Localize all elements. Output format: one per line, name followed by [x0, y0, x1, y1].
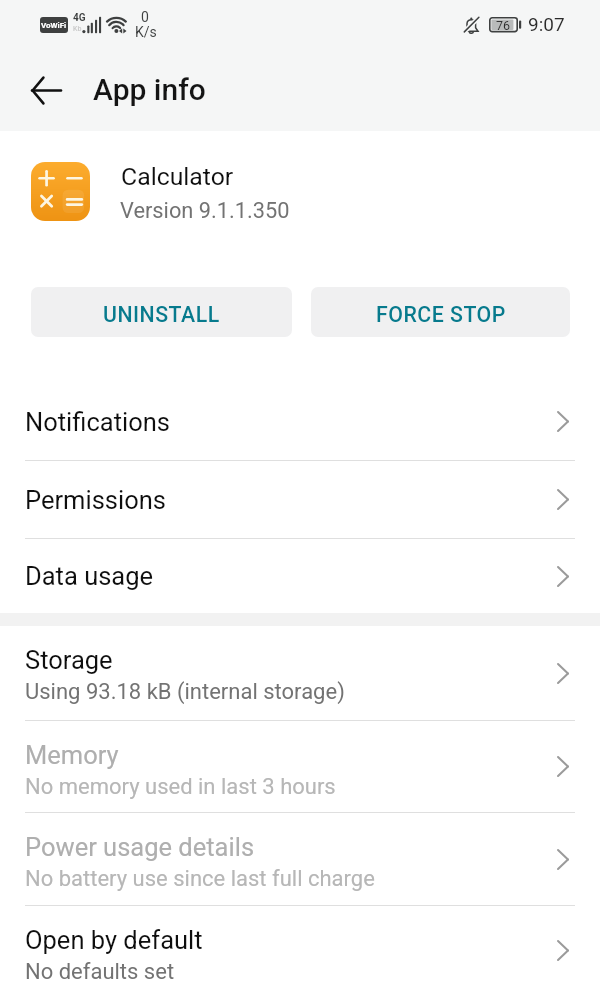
staticText: Open by default — [25, 925, 203, 955]
staticText: UNINSTALL — [103, 302, 220, 327]
staticText: No defaults set — [25, 959, 175, 985]
staticText: Notifications — [25, 407, 170, 437]
staticText: Power usage details — [25, 832, 255, 862]
staticText: No memory used in last 3 hours — [25, 774, 336, 800]
button[interactable]: FORCE STOP — [311, 287, 570, 337]
button[interactable]: Memory — [0, 721, 600, 812]
staticText: 0 — [141, 9, 149, 25]
staticText: K/s — [135, 24, 157, 40]
other: Silent mode — [463, 16, 481, 34]
button[interactable]: Power usage details — [0, 813, 600, 905]
staticText: Storage — [25, 645, 113, 675]
button[interactable]: Open by default — [0, 906, 600, 994]
button[interactable]: Notifications — [0, 383, 600, 460]
staticText: Data usage — [25, 561, 154, 591]
staticText: Using 93.18 kB (internal storage) — [25, 679, 345, 705]
staticText: No battery use since last full charge — [25, 866, 375, 892]
staticText: Version 9.1.1.350 — [120, 198, 290, 224]
staticText: VoWiFi — [41, 21, 67, 30]
button[interactable]: Storage — [0, 626, 600, 720]
button[interactable]: Permissions — [0, 461, 600, 538]
button[interactable]: Back — [12, 56, 80, 124]
staticText: 4G — [73, 12, 86, 24]
button[interactable]: UNINSTALL — [31, 287, 292, 337]
staticText: 76 — [496, 18, 511, 33]
staticText: FORCE STOP — [376, 302, 506, 327]
staticText: Permissions — [25, 485, 166, 515]
staticText: Memory — [25, 740, 119, 770]
staticText: Kb — [73, 25, 82, 33]
staticText: 9:07 — [528, 13, 565, 35]
button[interactable]: Data usage — [0, 539, 600, 613]
staticText: App info — [93, 72, 206, 107]
staticText: Calculator — [121, 162, 234, 191]
